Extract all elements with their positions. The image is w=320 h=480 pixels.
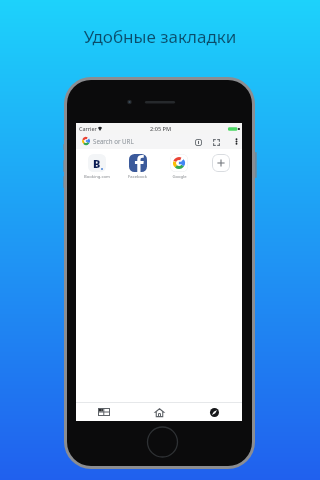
button[interactable]: Explore — [187, 403, 242, 421]
staticText: Search or URL — [93, 137, 134, 145]
staticText: Carrier — [79, 125, 97, 132]
staticText: 2:05 PM — [150, 125, 172, 133]
button[interactable]: Tabs — [191, 135, 205, 149]
staticText: Booking.com — [84, 174, 110, 180]
staticText: B — [93, 156, 101, 171]
button[interactable]: Expand — [209, 135, 223, 149]
staticText: Facebook — [128, 174, 147, 180]
button[interactable]: Facebook — [117, 149, 158, 181]
button[interactable]: More options — [231, 136, 242, 147]
button[interactable]: Home — [132, 403, 187, 421]
staticText: Удобные закладки — [0, 25, 320, 48]
staticText: Google — [172, 174, 187, 180]
button[interactable]: Google — [158, 149, 200, 181]
button[interactable]: Bookmarks — [76, 403, 132, 421]
button[interactable] — [200, 149, 242, 181]
button[interactable]: B — [76, 149, 117, 181]
